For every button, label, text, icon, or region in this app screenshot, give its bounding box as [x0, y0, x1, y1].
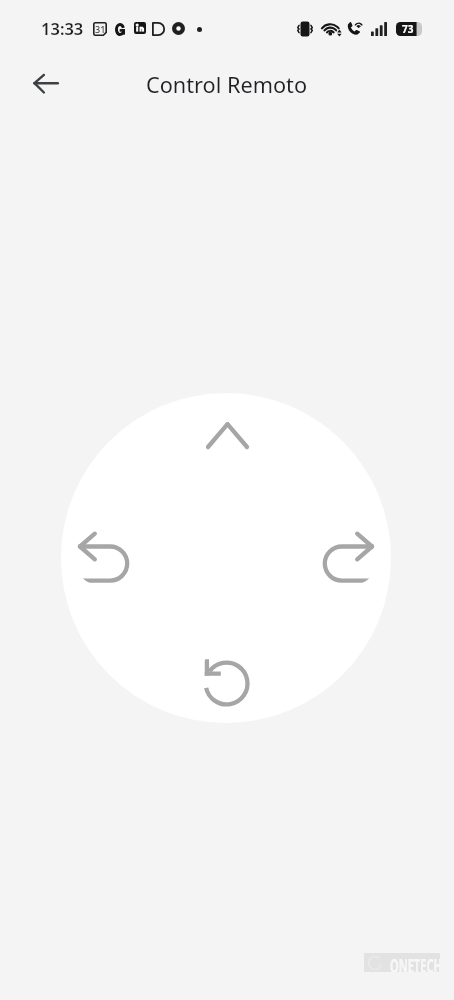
button[interactable]: Undo — [70, 515, 142, 587]
staticText: 73 — [402, 22, 414, 36]
button[interactable]: Redo — [310, 515, 382, 587]
staticText: 13:33 — [41, 17, 84, 39]
button[interactable]: Up — [196, 412, 260, 476]
button[interactable]: Rotate left — [194, 651, 260, 717]
staticText: ONETECH — [390, 953, 440, 972]
button[interactable]: Back — [22, 63, 70, 111]
staticText: 31 — [95, 23, 106, 35]
staticText: Control Remoto — [146, 70, 308, 100]
